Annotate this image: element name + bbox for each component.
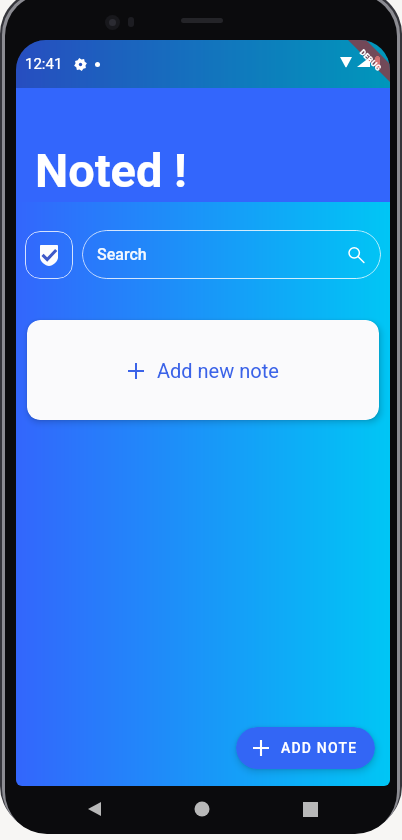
button[interactable]: Verified notes: [25, 231, 73, 279]
staticText: Noted !: [35, 143, 187, 198]
staticText: 12:41: [25, 55, 63, 73]
staticText: Add new note: [157, 359, 279, 382]
button[interactable]: ADD NOTE: [236, 727, 375, 769]
staticText: ADD NOTE: [281, 740, 358, 756]
staticText: DEBUG: [358, 48, 383, 73]
button[interactable]: Add new note: [27, 320, 379, 420]
button[interactable]: Search: [82, 230, 381, 279]
staticText: Search: [97, 245, 147, 264]
